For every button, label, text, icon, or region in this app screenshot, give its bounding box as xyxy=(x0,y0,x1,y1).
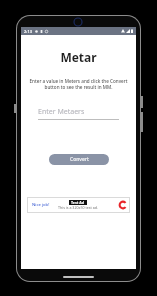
other: Advertiser logo xyxy=(118,200,128,210)
staticText: Enter Metaers xyxy=(38,107,85,117)
button[interactable]: Nice job! xyxy=(27,197,130,213)
staticText: Enter a value in Meters and click the Co… xyxy=(28,78,129,90)
staticText: Metar xyxy=(60,49,97,65)
staticText: Convert xyxy=(70,156,89,163)
button[interactable]: Enter Metaers xyxy=(38,107,119,120)
staticText: This is a 320x50 test ad. xyxy=(58,205,98,210)
staticText: 2:13 xyxy=(24,29,32,34)
staticText: Nice job! xyxy=(32,202,50,208)
staticText: Test Ad xyxy=(71,200,85,205)
button[interactable]: Convert xyxy=(49,154,109,165)
